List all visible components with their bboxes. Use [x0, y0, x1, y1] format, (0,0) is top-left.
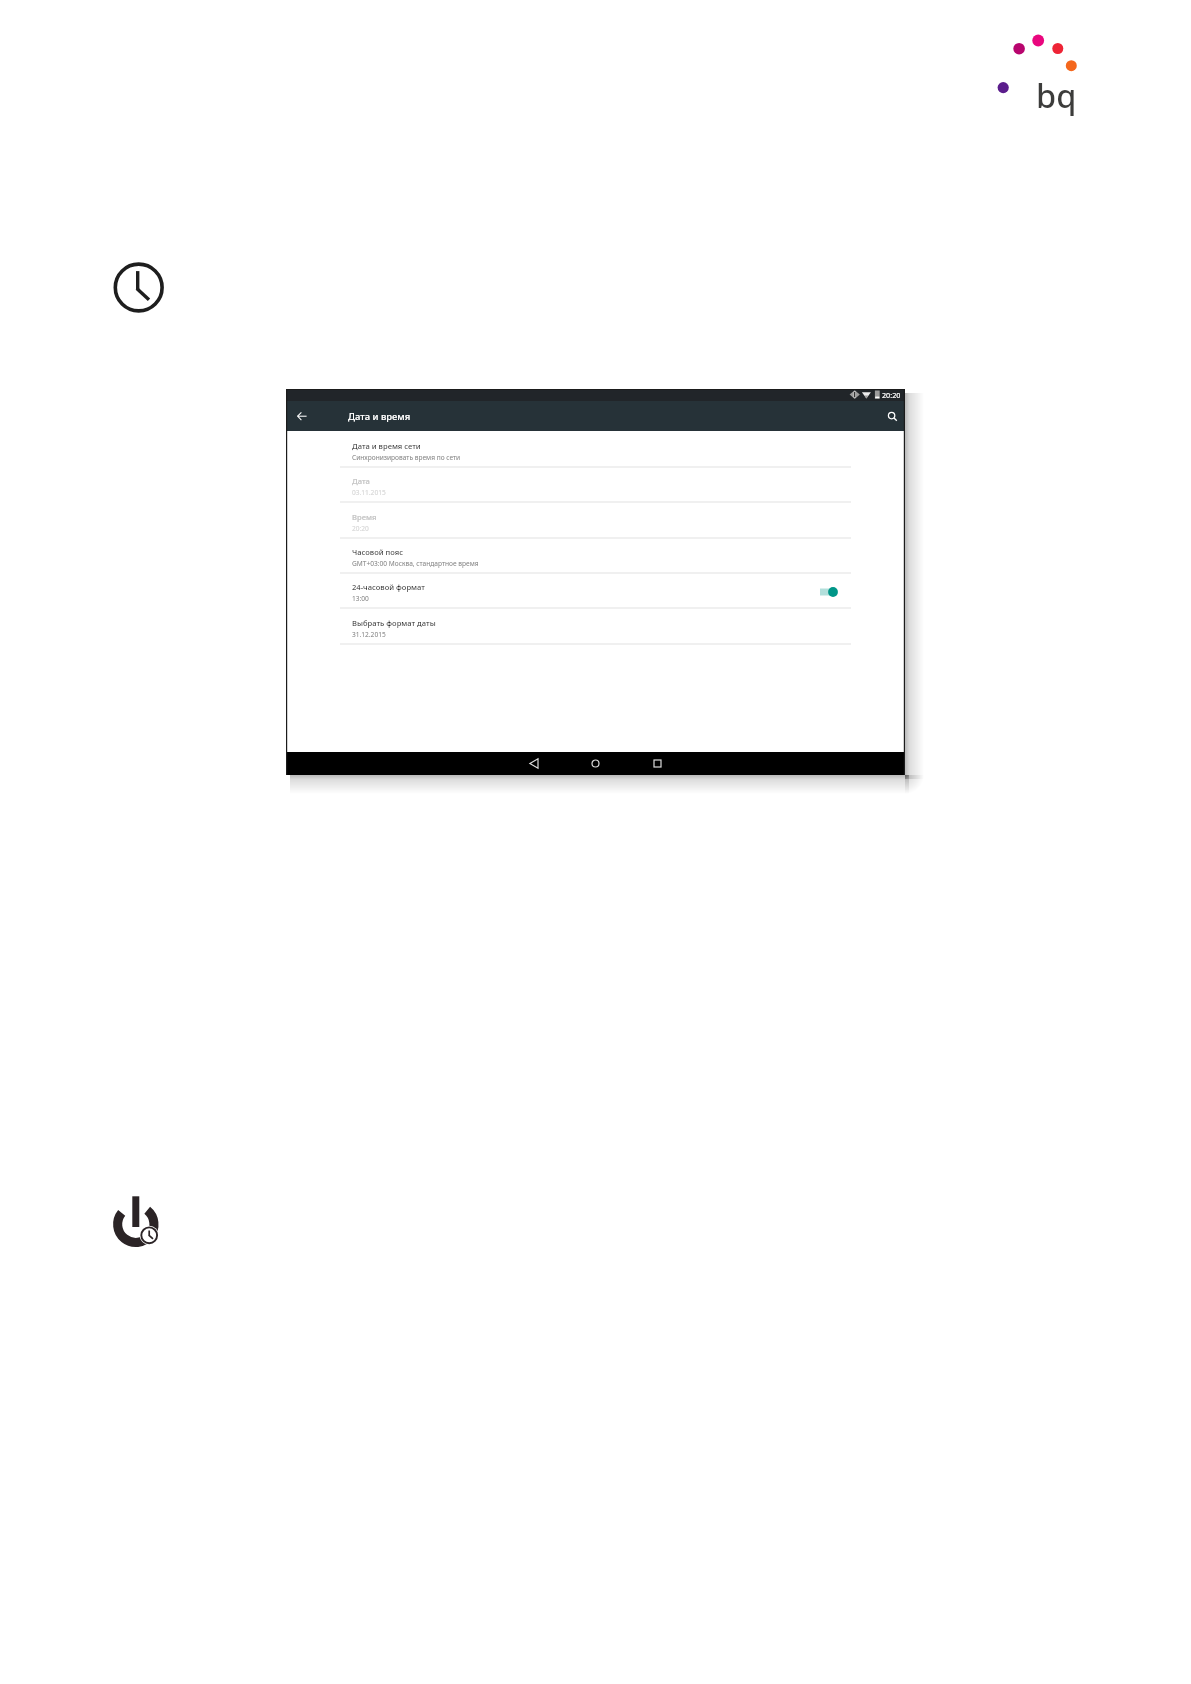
- staticText: Синхронизировать время по сети: [352, 453, 461, 462]
- staticText: Выбрать формат даты: [352, 618, 436, 628]
- staticText: 20:20: [882, 390, 901, 400]
- button[interactable]: Home: [579, 752, 611, 775]
- button[interactable]: Back: [290, 401, 314, 431]
- staticText: Время: [352, 512, 377, 522]
- other: Clock: [111, 260, 167, 316]
- button[interactable]: 24-hour format toggle: [816, 585, 838, 599]
- staticText: Дата: [352, 476, 370, 486]
- button[interactable]: Back: [518, 752, 550, 775]
- button[interactable]: Search: [881, 401, 903, 431]
- other: bq logo: [990, 25, 1085, 115]
- button[interactable]: Часовой пояс: [340, 539, 851, 574]
- button[interactable]: Recent apps: [641, 752, 673, 775]
- staticText: 24-часовой формат: [352, 582, 425, 592]
- staticText: 13:00: [352, 594, 369, 603]
- staticText: 03.11.2015: [352, 488, 386, 497]
- staticText: bq: [1036, 73, 1077, 117]
- staticText: Часовой пояс: [352, 547, 404, 557]
- button[interactable]: Время: [340, 503, 851, 539]
- button[interactable]: Выбрать формат даты: [340, 609, 851, 645]
- button[interactable]: Дата: [340, 468, 851, 503]
- button[interactable]: Дата и время сети: [340, 432, 851, 468]
- staticText: GMT+03:00 Москва, стандартное время: [352, 559, 479, 568]
- staticText: Дата и время: [348, 410, 411, 423]
- staticText: Дата и время сети: [352, 441, 421, 451]
- staticText: 20:20: [352, 524, 369, 533]
- other: Scheduled power on/off: [110, 1190, 170, 1250]
- staticText: 31.12.2015: [352, 630, 386, 639]
- button[interactable]: 24-часовой формат: [340, 574, 851, 609]
